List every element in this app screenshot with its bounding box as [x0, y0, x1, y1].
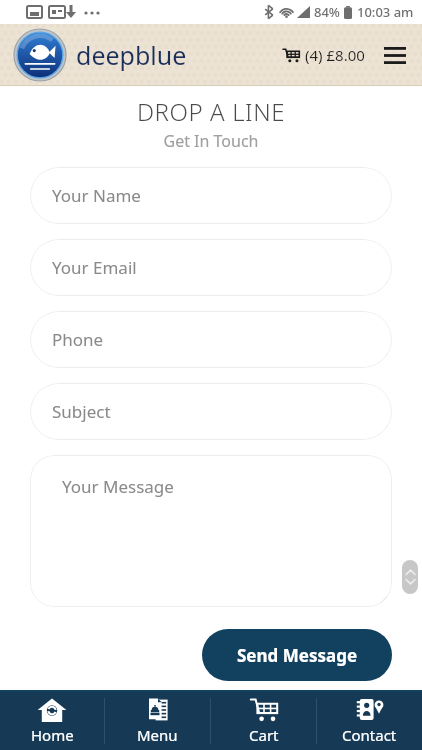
- button[interactable]: Send Message: [202, 629, 392, 681]
- staticText: Home: [31, 725, 74, 745]
- staticText: Your Email: [52, 256, 137, 279]
- staticText: Your Message: [62, 475, 174, 498]
- button[interactable]: Scroll: [402, 560, 418, 594]
- button[interactable]: Your Name: [30, 167, 392, 224]
- button[interactable]: (4) £8.00: [281, 39, 367, 71]
- staticText: 84%: [314, 3, 340, 21]
- staticText: DROP A LINE: [0, 95, 422, 128]
- staticText: Get In Touch: [0, 130, 422, 152]
- button[interactable]: Phone: [30, 311, 392, 368]
- button[interactable]: Home: [0, 692, 104, 750]
- staticText: 10:03 am: [357, 3, 414, 21]
- staticText: Phone: [52, 328, 104, 351]
- button[interactable]: Cart: [211, 692, 316, 750]
- button[interactable]: Menu: [380, 40, 410, 70]
- staticText: Send Message: [237, 644, 358, 667]
- staticText: deepblue: [76, 38, 187, 72]
- button[interactable]: Subject: [30, 383, 392, 440]
- button[interactable]: Your Message: [30, 455, 392, 607]
- staticText: Your Name: [52, 184, 141, 207]
- button[interactable]: Your Email: [30, 239, 392, 296]
- button[interactable]: Menu: [105, 692, 210, 750]
- staticText: Menu: [137, 725, 178, 745]
- staticText: (4) £8.00: [305, 45, 365, 65]
- staticText: Subject: [52, 400, 111, 423]
- staticText: Cart: [249, 725, 279, 745]
- staticText: Contact: [342, 725, 397, 745]
- button[interactable]: Contact: [317, 692, 422, 750]
- button[interactable]: deepblue home: [14, 29, 187, 81]
